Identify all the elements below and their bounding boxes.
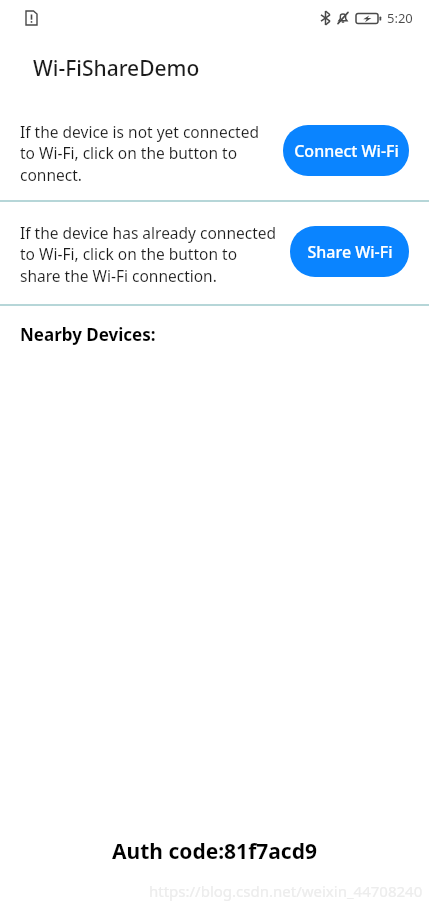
staticText: Wi-FiShareDemo xyxy=(33,54,200,83)
staticText: https://blog.csdn.net/weixin_44708240 xyxy=(149,881,423,901)
staticText: Connect Wi-Fi xyxy=(294,140,399,162)
staticText: If the device is not yet connected to Wi… xyxy=(20,121,259,186)
staticText: Share Wi-Fi xyxy=(307,241,393,263)
button[interactable]: Share Wi-Fi xyxy=(290,226,409,277)
staticText: 5:20 xyxy=(387,9,413,27)
staticText: Auth code:81f7acd9 xyxy=(112,837,317,866)
staticText: Nearby Devices: xyxy=(20,323,156,346)
staticText: If the device has already connected to W… xyxy=(20,222,277,287)
button[interactable]: Connect Wi-Fi xyxy=(283,125,409,176)
